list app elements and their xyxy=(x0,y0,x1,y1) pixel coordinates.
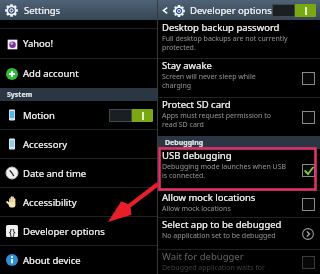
button[interactable] xyxy=(272,4,316,17)
button[interactable]: {} xyxy=(0,217,157,245)
staticText: Date and time xyxy=(23,167,87,180)
staticText: Add account xyxy=(23,67,79,80)
button[interactable]: Motion xyxy=(0,101,157,129)
button[interactable]: Yahoo! xyxy=(0,29,157,58)
button[interactable]: Select app to be debugged xyxy=(158,218,320,249)
staticText: Yahoo! xyxy=(23,37,54,50)
button[interactable]: Accessibility xyxy=(0,188,157,216)
button[interactable]: Toggle xyxy=(299,253,317,271)
staticText: Select app to be debugged xyxy=(162,218,282,231)
staticText: Motion xyxy=(23,109,55,122)
staticText: Accessory xyxy=(23,138,68,151)
button[interactable]: About device xyxy=(0,246,157,274)
staticText: Debugging xyxy=(165,138,204,148)
staticText: Allow mock locations xyxy=(162,204,231,214)
staticText: No application set to be debugged xyxy=(162,231,276,241)
button[interactable] xyxy=(109,109,153,122)
staticText: {} xyxy=(9,226,16,237)
button[interactable]: Accessory xyxy=(0,130,157,158)
staticText: Wait for debugger xyxy=(162,250,244,263)
staticText: Protect SD card xyxy=(162,98,231,111)
staticText: Accessibility xyxy=(23,196,77,209)
staticText: Allow mock locations xyxy=(162,191,256,204)
staticText: Apps must request permission to read SD … xyxy=(162,111,271,129)
button[interactable]: Protect SD card xyxy=(158,98,320,136)
staticText: USB debugging xyxy=(162,149,232,162)
button[interactable]: Allow mock locations xyxy=(158,191,320,217)
button[interactable]: Open xyxy=(299,225,317,243)
staticText: Developer options xyxy=(190,4,272,17)
staticText: System xyxy=(7,90,33,100)
staticText: Debugged application waits for debugger … xyxy=(162,263,279,274)
button[interactable]: Toggle xyxy=(299,195,317,213)
button[interactable]: Date and time xyxy=(0,159,157,187)
button[interactable]: Wait for debugger xyxy=(158,250,320,274)
button[interactable]: Desktop backup password xyxy=(158,20,320,58)
staticText: Settings xyxy=(24,4,61,17)
staticText: About device xyxy=(23,254,81,267)
staticText: Screen will never sleep while charging xyxy=(162,72,256,90)
button[interactable]: Add account xyxy=(0,59,157,88)
button[interactable]: Toggle xyxy=(299,161,317,179)
button[interactable]: Back xyxy=(160,5,171,16)
button[interactable]: Toggle xyxy=(299,69,317,87)
staticText: Desktop backup password xyxy=(162,21,280,34)
button[interactable]: USB debugging xyxy=(158,149,320,190)
staticText: Developer options xyxy=(23,225,105,238)
staticText: Full desktop backups are not currently p… xyxy=(162,34,288,52)
button[interactable]: Toggle xyxy=(299,108,317,126)
staticText: Stay awake xyxy=(162,59,212,72)
button[interactable]: Settings xyxy=(0,0,157,20)
staticText: Debugging mode launches when USB is conn… xyxy=(162,162,287,180)
button[interactable]: Stay awake xyxy=(158,59,320,97)
